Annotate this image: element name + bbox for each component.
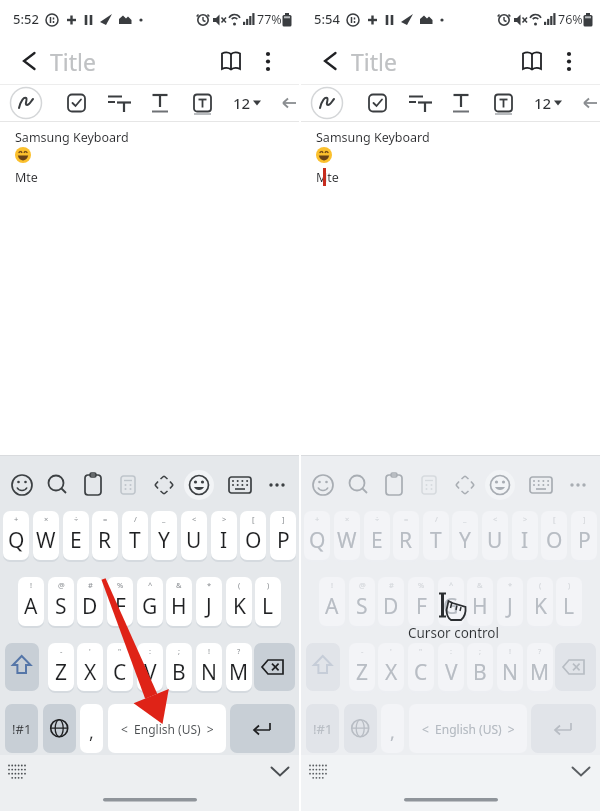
button[interactable] <box>214 44 248 78</box>
button[interactable]: / <box>423 511 449 560</box>
button[interactable] <box>10 43 46 79</box>
button[interactable]: + <box>304 511 330 560</box>
button[interactable] <box>531 704 596 753</box>
button[interactable]: _ <box>151 511 177 560</box>
button[interactable]: % <box>107 577 133 626</box>
button[interactable]: ' <box>378 643 404 691</box>
button[interactable] <box>344 704 377 753</box>
button[interactable] <box>485 469 517 501</box>
button[interactable] <box>219 469 251 501</box>
button[interactable]: , <box>381 704 404 753</box>
button[interactable] <box>148 469 180 501</box>
button[interactable] <box>343 469 375 501</box>
button[interactable] <box>311 43 347 79</box>
button[interactable]: % <box>408 577 434 626</box>
button[interactable]: - <box>349 643 375 691</box>
button[interactable] <box>395 87 427 119</box>
button[interactable] <box>266 758 296 784</box>
button[interactable] <box>311 87 343 119</box>
button[interactable]: ( <box>226 577 252 626</box>
button[interactable]: ^ <box>438 577 464 626</box>
button[interactable]: # <box>378 577 404 626</box>
button[interactable] <box>305 758 335 784</box>
button[interactable]: * <box>497 577 523 626</box>
button[interactable] <box>6 469 38 501</box>
button[interactable]: !#1 <box>306 704 339 753</box>
button[interactable] <box>251 44 285 78</box>
button[interactable] <box>555 643 596 691</box>
button[interactable]: ) <box>255 577 281 626</box>
button[interactable] <box>10 87 42 119</box>
button[interactable]: ÷ <box>364 511 390 560</box>
button[interactable] <box>220 87 252 119</box>
button[interactable]: < English (US) > <box>108 704 226 753</box>
button[interactable]: @ <box>48 577 74 626</box>
button[interactable]: [ <box>541 511 567 560</box>
button[interactable] <box>449 469 481 501</box>
button[interactable] <box>556 469 588 501</box>
button[interactable] <box>184 469 216 501</box>
button[interactable] <box>178 87 210 119</box>
button[interactable]: > <box>512 511 538 560</box>
button[interactable] <box>378 469 410 501</box>
button[interactable] <box>113 469 145 501</box>
button[interactable]: ) <box>556 577 582 626</box>
button[interactable] <box>479 87 511 119</box>
button[interactable]: & <box>166 577 192 626</box>
button[interactable]: ] <box>270 511 296 560</box>
button[interactable] <box>552 44 586 78</box>
button[interactable] <box>414 469 446 501</box>
button[interactable] <box>520 469 552 501</box>
button[interactable] <box>4 758 34 784</box>
button[interactable]: _ <box>452 511 478 560</box>
button[interactable]: > <box>211 511 237 560</box>
button[interactable]: < English (US) > <box>409 704 527 753</box>
button[interactable]: # <box>77 577 103 626</box>
button[interactable]: & <box>467 577 493 626</box>
button[interactable] <box>77 469 109 501</box>
button[interactable]: " <box>107 643 133 691</box>
button[interactable] <box>255 469 287 501</box>
button[interactable]: ( <box>527 577 553 626</box>
button[interactable] <box>5 643 39 691</box>
button[interactable] <box>521 87 553 119</box>
button[interactable]: ; <box>166 643 192 691</box>
button[interactable]: : <box>137 643 163 691</box>
button[interactable]: = <box>92 511 118 560</box>
button[interactable] <box>307 469 339 501</box>
button[interactable]: !#1 <box>5 704 38 753</box>
button[interactable]: + <box>3 511 29 560</box>
button[interactable]: ÷ <box>63 511 89 560</box>
button[interactable] <box>43 704 76 753</box>
button[interactable] <box>52 87 84 119</box>
button[interactable] <box>515 44 549 78</box>
button[interactable] <box>230 704 295 753</box>
button[interactable]: ; <box>467 643 493 691</box>
button[interactable]: = <box>393 511 419 560</box>
button[interactable] <box>437 87 469 119</box>
button[interactable] <box>306 643 340 691</box>
button[interactable]: < <box>181 511 207 560</box>
button[interactable]: : <box>438 643 464 691</box>
button[interactable]: ^ <box>137 577 163 626</box>
button[interactable] <box>254 643 295 691</box>
button[interactable]: @ <box>349 577 375 626</box>
button[interactable]: " <box>408 643 434 691</box>
button[interactable]: / <box>122 511 148 560</box>
button[interactable]: ! <box>18 577 44 626</box>
button[interactable] <box>94 87 126 119</box>
button[interactable]: ? <box>527 643 553 691</box>
button[interactable]: ' <box>77 643 103 691</box>
button[interactable] <box>567 758 597 784</box>
button[interactable]: × <box>33 511 59 560</box>
button[interactable]: ! <box>319 577 345 626</box>
button[interactable] <box>353 87 385 119</box>
button[interactable]: ] <box>571 511 597 560</box>
button[interactable] <box>42 469 74 501</box>
button[interactable]: ! <box>497 643 523 691</box>
button[interactable]: ! <box>196 643 222 691</box>
button[interactable]: × <box>334 511 360 560</box>
button[interactable]: , <box>80 704 103 753</box>
button[interactable]: [ <box>240 511 266 560</box>
button[interactable]: - <box>48 643 74 691</box>
